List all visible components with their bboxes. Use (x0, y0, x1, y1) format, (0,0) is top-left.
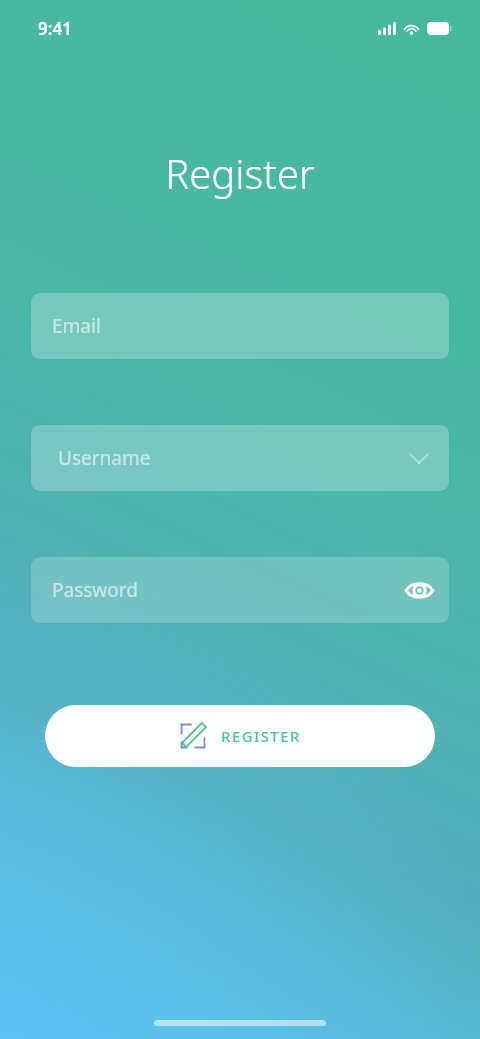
button[interactable]: Password (31, 557, 449, 623)
button[interactable]: REGISTER (45, 705, 435, 767)
button[interactable]: Email (31, 293, 449, 359)
button[interactable]: Select username (397, 436, 441, 480)
button[interactable]: Show password (397, 568, 441, 612)
staticText: Email (52, 313, 101, 339)
button[interactable]: Username (31, 425, 449, 491)
staticText: Password (52, 577, 138, 603)
staticText: REGISTER (221, 726, 301, 746)
staticText: Username (58, 445, 151, 471)
staticText: 9:41 (38, 17, 72, 40)
staticText: Register (165, 146, 315, 200)
